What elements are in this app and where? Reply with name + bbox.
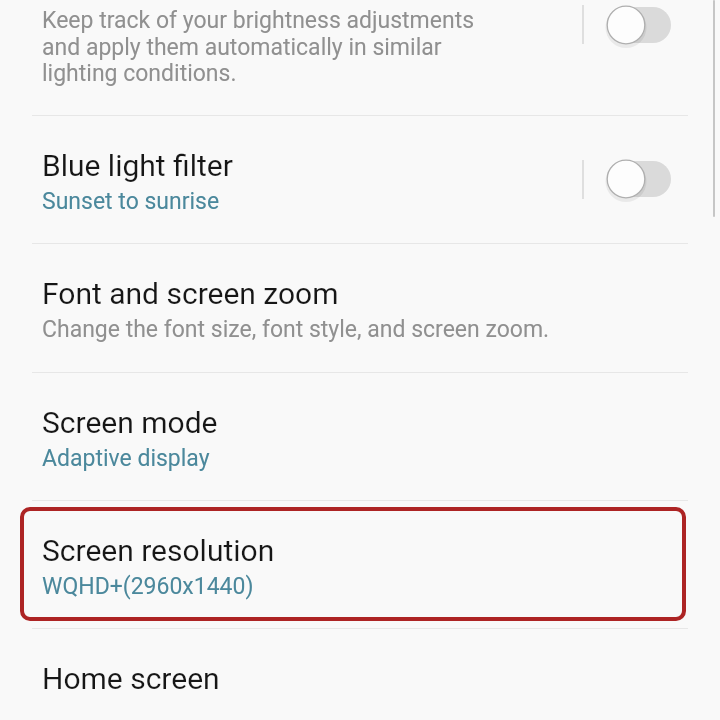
staticText: Adaptive display — [42, 445, 210, 472]
staticText: Screen resolution — [42, 533, 275, 568]
button[interactable]: Auto brightness — [606, 5, 672, 45]
button[interactable]: Screen resolution — [0, 501, 720, 628]
button[interactable]: Blue light filter — [606, 159, 672, 199]
staticText: Font and screen zoom — [42, 276, 339, 311]
button[interactable]: Font and screen zoom — [0, 244, 720, 372]
staticText: Keep track of your brightness adjustment… — [42, 7, 475, 87]
button[interactable]: Screen mode — [0, 373, 720, 500]
staticText: Blue light filter — [42, 148, 233, 183]
button[interactable]: Keep track of your brightness adjustment… — [0, 0, 720, 115]
button[interactable]: Home screen — [0, 629, 720, 720]
staticText: WQHD+(2960x1440) — [42, 573, 254, 600]
button[interactable]: Blue light filter — [0, 116, 720, 243]
staticText: Sunset to sunrise — [42, 188, 220, 215]
staticText: Home screen — [42, 661, 220, 696]
staticText: Change the font size, font style, and sc… — [42, 316, 550, 343]
staticText: Screen mode — [42, 405, 218, 440]
